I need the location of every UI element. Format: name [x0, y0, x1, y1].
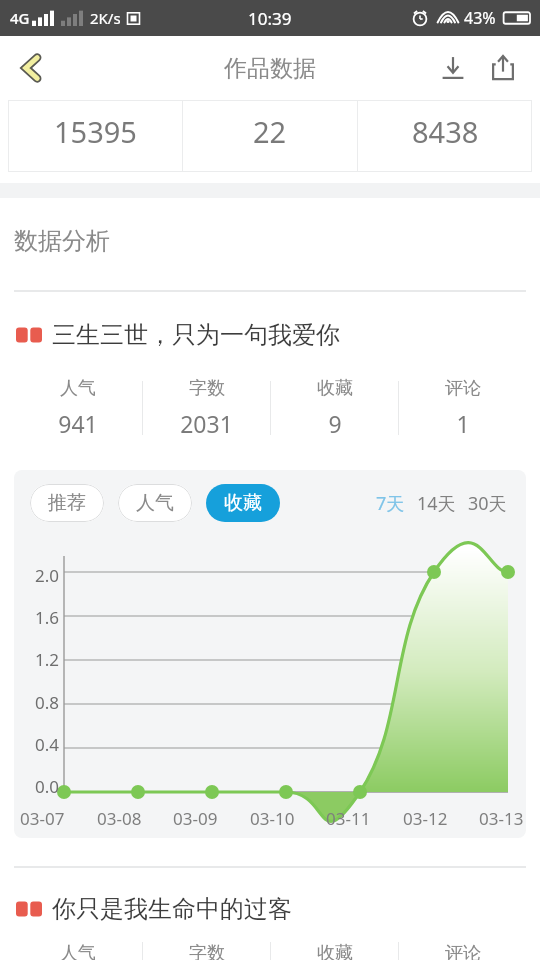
button[interactable]: 收藏 — [206, 484, 280, 522]
staticText: 三生三世，只为一句我爱你 — [52, 320, 340, 350]
staticText: 8438 — [412, 112, 479, 151]
staticText: 941 — [58, 408, 98, 439]
button[interactable]: 人气 — [118, 484, 192, 522]
button[interactable]: Back — [6, 42, 58, 94]
button[interactable]: 三生三世，只为一句我爱你 — [16, 320, 524, 350]
button[interactable]: Share — [480, 45, 526, 91]
staticText: 评论 — [445, 942, 481, 960]
staticText: 作品数据 — [224, 54, 316, 83]
staticText: 数据分析 — [14, 226, 110, 256]
button[interactable]: 字数 — [143, 368, 270, 448]
staticText: 22 — [253, 112, 287, 151]
button[interactable]: 人气 — [14, 942, 142, 960]
staticText: 03-11 — [326, 807, 371, 830]
staticText: 03-13 — [479, 807, 524, 830]
button[interactable]: 评论 — [399, 368, 526, 448]
staticText: 0.8 — [35, 691, 60, 714]
staticText: 03-08 — [97, 807, 142, 830]
button[interactable]: 7天 — [375, 485, 406, 522]
staticText: 推荐 — [48, 491, 86, 515]
staticText: 03-09 — [173, 807, 218, 830]
staticText: 2.0 — [35, 564, 60, 587]
staticText: 0.0 — [35, 775, 60, 798]
staticText: 1 — [456, 408, 470, 439]
staticText: 1.6 — [35, 606, 60, 629]
staticText: 人气 — [136, 491, 174, 515]
staticText: 10:39 — [248, 7, 292, 30]
button[interactable]: 你只是我生命中的过客 — [16, 894, 524, 924]
staticText: 收藏 — [317, 377, 353, 400]
button[interactable]: 8438 — [358, 100, 532, 172]
staticText: 4G — [10, 8, 30, 28]
button[interactable]: 字数 — [143, 942, 270, 960]
button[interactable]: 22 — [183, 100, 357, 172]
staticText: 03-10 — [250, 807, 295, 830]
staticText: 人气 — [60, 942, 96, 960]
button[interactable]: 30天 — [467, 485, 508, 522]
staticText: 43% — [464, 7, 496, 29]
staticText: 7天 — [376, 491, 405, 516]
button[interactable]: 推荐 — [30, 484, 104, 522]
staticText: 字数 — [189, 377, 225, 400]
staticText: 1.2 — [35, 648, 60, 671]
staticText: 你只是我生命中的过客 — [52, 894, 292, 924]
button[interactable]: 收藏 — [271, 368, 398, 448]
button[interactable]: 收藏 — [271, 942, 398, 960]
button[interactable]: 15395 — [8, 100, 182, 172]
button[interactable]: 14天 — [416, 485, 457, 522]
staticText: 03-07 — [20, 807, 65, 830]
staticText: 收藏 — [317, 942, 353, 960]
staticText: 字数 — [189, 942, 225, 960]
staticText: 9 — [328, 408, 342, 439]
staticText: 2031 — [180, 408, 233, 439]
staticText: 14天 — [417, 491, 456, 516]
staticText: 30天 — [468, 491, 507, 516]
button[interactable]: 评论 — [399, 942, 526, 960]
staticText: 0.4 — [35, 733, 60, 756]
staticText: 03-12 — [403, 807, 448, 830]
button[interactable]: 人气 — [14, 368, 142, 448]
staticText: 15395 — [54, 112, 137, 151]
button[interactable]: Download — [430, 45, 476, 91]
staticText: 收藏 — [224, 491, 262, 515]
staticText: 评论 — [445, 377, 481, 400]
staticText: 2K/s — [90, 8, 121, 28]
staticText: 人气 — [60, 377, 96, 400]
